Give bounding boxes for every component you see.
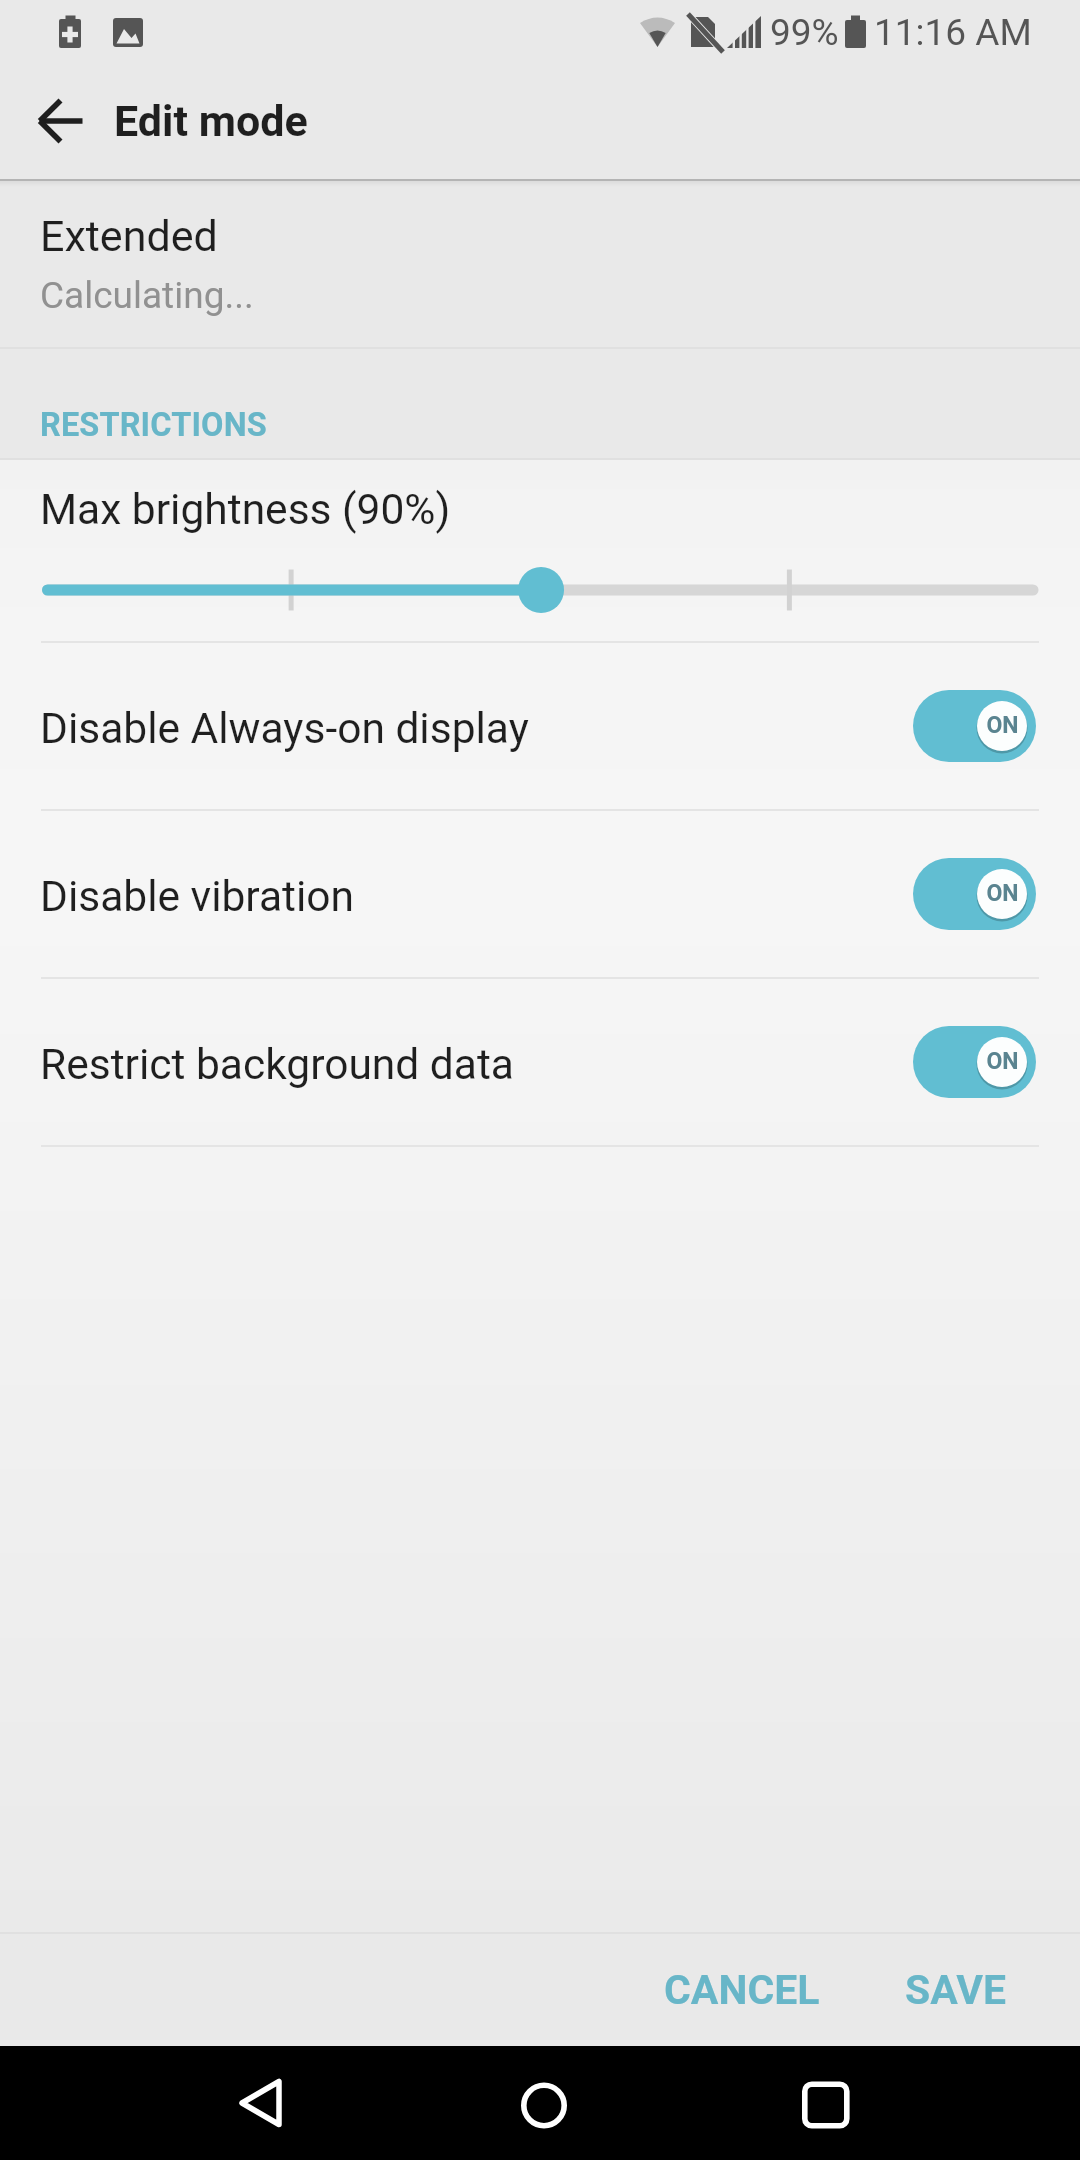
staticText: ON — [986, 1048, 1019, 1075]
button[interactable]: Disable vibration — [0, 811, 1080, 977]
staticText: 99% — [770, 11, 839, 54]
staticText: SAVE — [905, 1966, 1007, 2014]
button[interactable]: Disable Always-on display — [0, 643, 1080, 809]
staticText: Restrict background data — [40, 1040, 913, 1090]
button[interactable]: Disable Always-on display, on — [913, 690, 1036, 762]
staticText: Extended — [40, 211, 218, 261]
button[interactable]: Back — [10, 77, 108, 175]
button[interactable]: Restrict background data, on — [913, 1026, 1036, 1098]
button[interactable]: Home — [483, 2046, 603, 2160]
staticText: Disable vibration — [40, 872, 913, 922]
staticText: ON — [986, 880, 1019, 907]
button[interactable]: Max brightness (90%) — [0, 460, 1080, 641]
button[interactable]: Restrict background data — [0, 979, 1080, 1145]
staticText: Disable Always-on display — [40, 704, 913, 754]
staticText: Edit mode — [114, 96, 308, 146]
staticText: Max brightness (90%) — [40, 485, 451, 535]
button[interactable]: Recent apps — [766, 2046, 886, 2160]
button[interactable]: Disable vibration, on — [913, 858, 1036, 930]
button[interactable]: SAVE — [879, 1942, 1033, 2038]
staticText: 11:16 AM — [874, 11, 1032, 54]
staticText: CANCEL — [664, 1966, 820, 2014]
staticText: RESTRICTIONS — [40, 406, 267, 444]
staticText: Calculating... — [40, 274, 254, 317]
button[interactable]: CANCEL — [638, 1942, 846, 2038]
staticText: ON — [986, 712, 1019, 739]
button[interactable]: Back — [202, 2046, 322, 2160]
